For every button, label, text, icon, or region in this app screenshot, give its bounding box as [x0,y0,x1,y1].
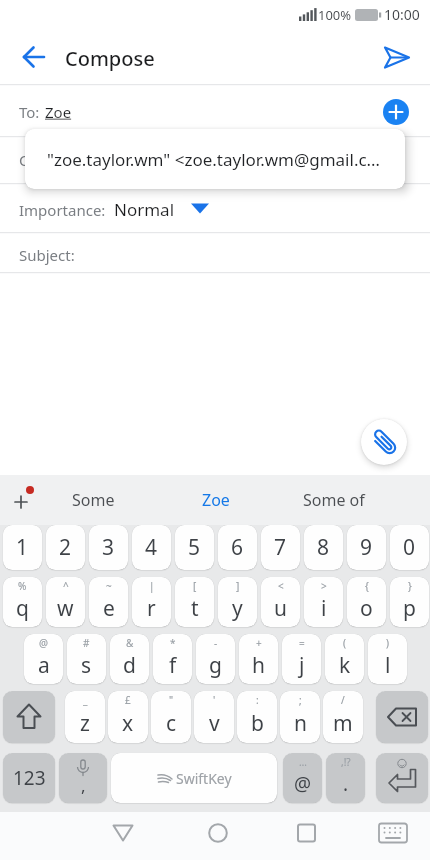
button[interactable]: 1 [3,525,42,570]
staticText: 6 [231,533,244,562]
staticText: . [343,771,349,797]
staticText: Cc/Bcc: [19,150,70,170]
button[interactable]: 7 [261,525,300,570]
button[interactable]: … [283,753,322,803]
button[interactable] [376,753,428,803]
staticText: ' [213,693,216,707]
button[interactable]: 8 [304,525,343,570]
button[interactable] [3,691,55,743]
staticText: | [149,579,155,593]
button[interactable]: 3 [89,525,128,570]
button[interactable]: { [347,577,386,627]
button[interactable]: ^ [46,577,85,627]
button[interactable]: ' [194,691,234,743]
staticText: / [341,693,345,707]
button[interactable] [376,691,428,743]
staticText: a [38,651,50,680]
button[interactable]: : [237,691,277,743]
button[interactable]: ; [280,691,320,743]
staticText: r [147,594,156,623]
button[interactable]: SwiftKey [111,753,277,803]
button[interactable]: 5 [175,525,214,570]
staticText: 123 [13,765,46,791]
button[interactable] [370,815,414,857]
button[interactable]: % [3,577,42,627]
staticText: " [169,693,174,707]
staticText: 100% [318,6,352,24]
button[interactable]: "zoe.taylor.wm" <zoe.taylor.wm@gmail.c… [25,129,405,189]
button[interactable]: [ [175,577,214,627]
staticText: @ [294,771,312,797]
staticText: w [57,594,74,623]
button[interactable] [196,815,240,857]
button[interactable]: 123 [3,753,55,803]
button[interactable]: * [153,634,192,684]
staticText: ^ [63,579,69,593]
button[interactable] [14,43,52,73]
button[interactable]: 2 [46,525,85,570]
staticText: t [191,594,199,623]
staticText: z [80,709,90,738]
button[interactable]: < [261,577,300,627]
staticText: { [365,579,369,593]
button[interactable]: > [304,577,343,627]
button[interactable]: ( [325,634,364,684]
button[interactable]: _ [65,691,105,743]
staticText: Subject: [19,245,75,265]
button[interactable]: # [67,634,106,684]
button[interactable] [284,815,328,857]
button[interactable]: Some of [296,484,372,516]
button[interactable]: 0 [390,525,429,570]
staticText: 5 [188,533,201,562]
button[interactable]: - [196,634,235,684]
button[interactable]: Some [58,484,128,516]
staticText: ~ [106,579,112,593]
button[interactable] [376,42,418,74]
button[interactable]: & [110,634,149,684]
staticText: £ [125,693,131,707]
button[interactable] [8,483,42,517]
staticText: + [256,636,262,650]
staticText: ,!? [341,755,351,769]
staticText: = [299,636,305,650]
button[interactable] [361,419,407,465]
button[interactable]: 9 [347,525,386,570]
button[interactable] [383,99,409,125]
staticText: j [299,651,305,680]
button[interactable]: 4 [132,525,171,570]
staticText: ( [343,636,346,650]
staticText: 3 [102,533,115,562]
staticText: Normal [114,198,175,221]
button[interactable] [101,815,145,857]
button[interactable]: " [151,691,191,743]
staticText: l [385,651,391,680]
button[interactable]: + [239,634,278,684]
staticText: g [209,651,222,680]
staticText: n [294,709,307,738]
button[interactable]: @ [24,634,63,684]
button[interactable]: } [390,577,429,627]
staticText: : [256,693,259,707]
button[interactable]: ,!? [326,753,365,803]
button[interactable]: ) [368,634,407,684]
staticText: x [122,709,134,738]
staticText: d [123,651,136,680]
button[interactable]: Zoe [185,484,247,516]
staticText: "zoe.taylor.wm" <zoe.taylor.wm@gmail.c… [47,148,381,171]
button[interactable]: ~ [89,577,128,627]
button[interactable]: ] [218,577,257,627]
staticText: … [299,755,307,769]
button[interactable]: | [132,577,171,627]
button[interactable]: , [59,753,107,803]
staticText: 1 [16,533,29,562]
staticText: & [126,636,134,650]
button[interactable]: £ [108,691,148,743]
staticText: 0 [403,533,416,562]
button[interactable]: / [323,691,363,743]
staticText: > [321,579,327,593]
button[interactable]: = [282,634,321,684]
staticText: ) [386,636,389,650]
staticText: y [232,594,243,623]
button[interactable]: 6 [218,525,257,570]
staticText: s [81,651,92,680]
